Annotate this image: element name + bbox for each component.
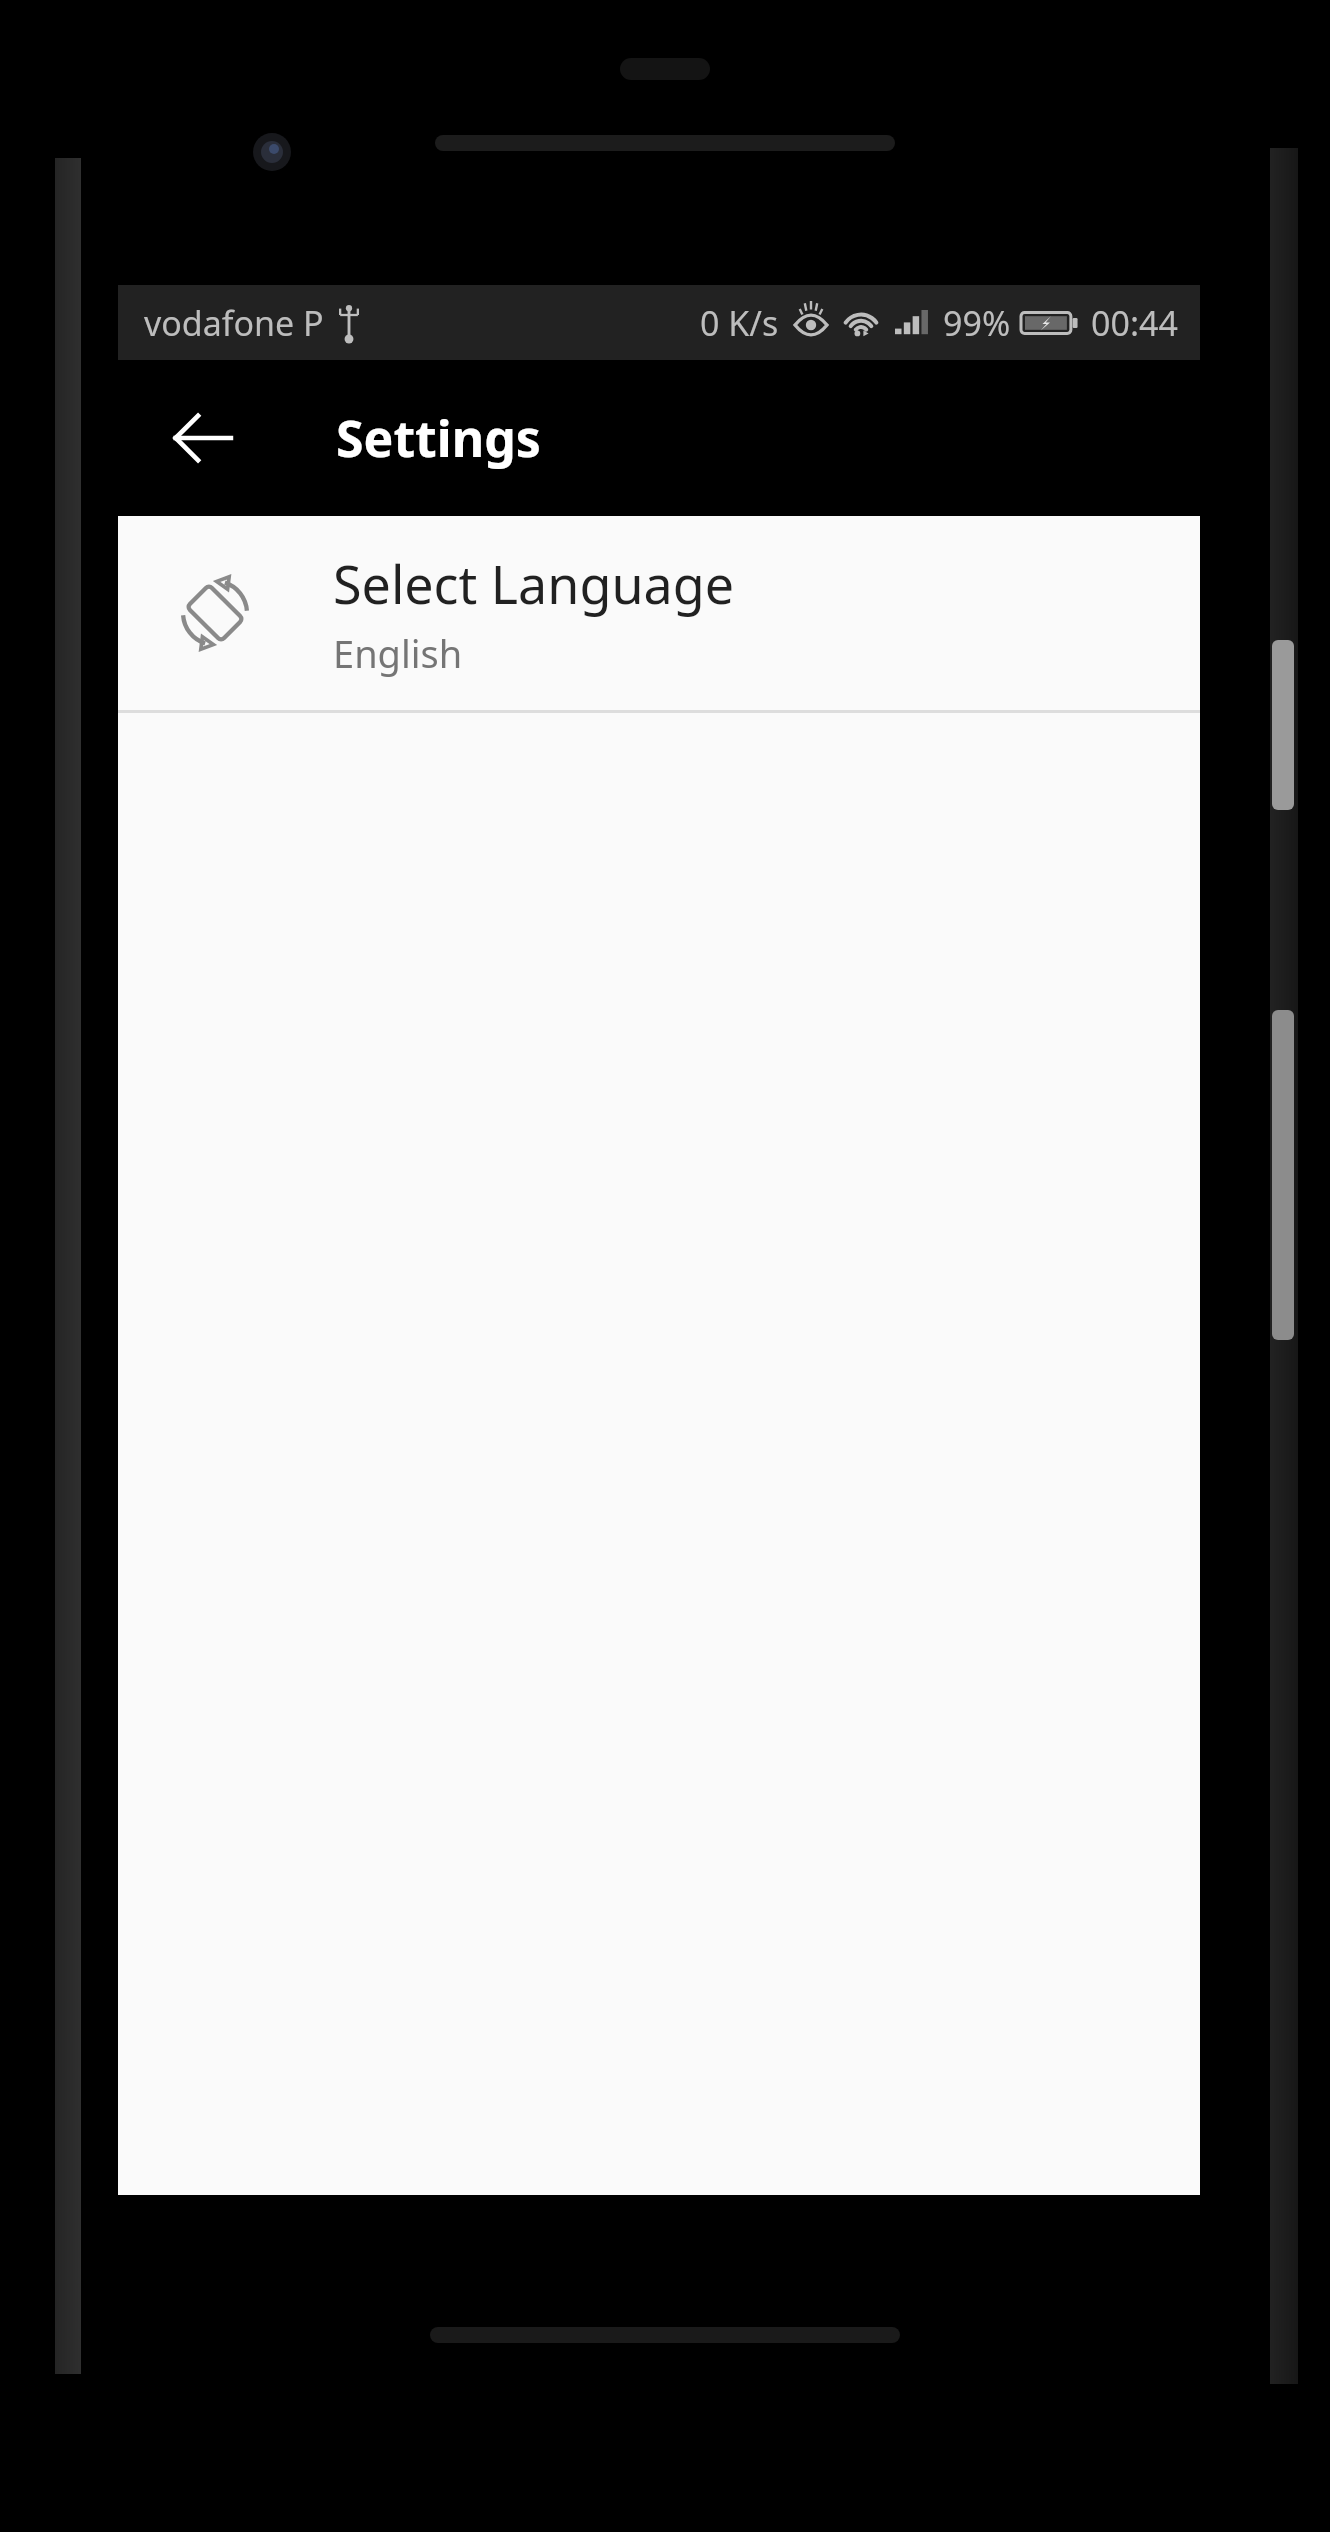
- staticText: 00:44: [1091, 300, 1178, 346]
- staticText: 99%: [943, 300, 1011, 346]
- staticText: vodafone P: [144, 300, 324, 346]
- button[interactable]: Back: [154, 389, 252, 487]
- button[interactable]: Select Language: [118, 516, 1200, 710]
- staticText: 0 K/s: [700, 300, 779, 346]
- staticText: Settings: [336, 404, 541, 472]
- staticText: English: [333, 627, 463, 679]
- staticText: Select Language: [333, 548, 735, 619]
